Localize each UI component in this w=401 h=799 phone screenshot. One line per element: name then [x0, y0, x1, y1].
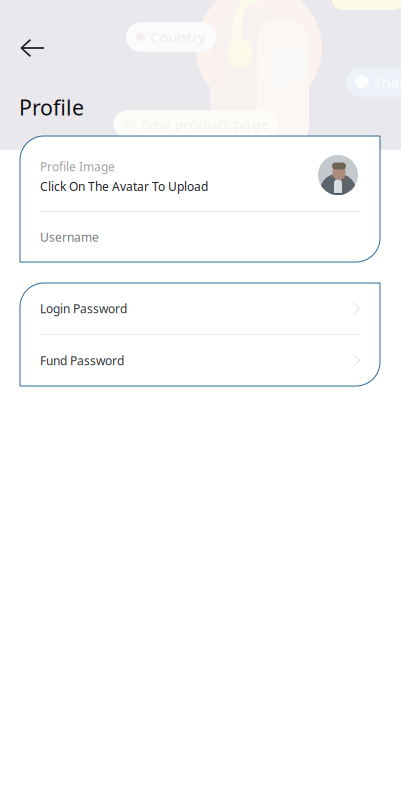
staticText: Profile Image [40, 159, 115, 174]
staticText: Username [40, 229, 99, 245]
staticText: Fund Password [40, 352, 124, 368]
staticText: Share [373, 72, 401, 92]
staticText: Profile [19, 93, 84, 121]
staticText: Click On The Avatar To Upload [40, 178, 208, 194]
staticText: Login Password [40, 300, 127, 316]
button[interactable]: Fund Password [20, 335, 380, 386]
staticText: Country [150, 27, 206, 47]
button[interactable]: Username [20, 212, 380, 262]
staticText: Saw product page [141, 114, 269, 134]
button[interactable]: Login Password [20, 283, 380, 334]
button[interactable]: Back [0, 0, 59, 69]
button[interactable]: Profile Image [20, 136, 380, 211]
